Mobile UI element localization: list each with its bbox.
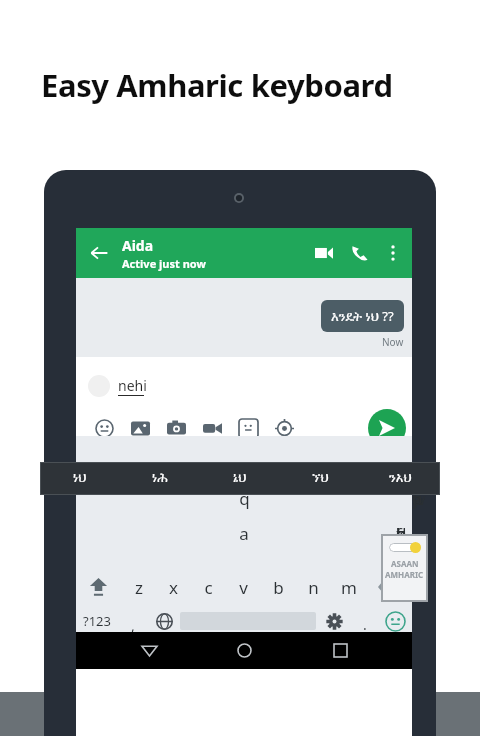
button[interactable]: ነሕ [120,462,200,495]
staticText: b [273,576,284,599]
button[interactable]: ኘህ [280,462,360,495]
staticText: a [239,522,249,545]
button[interactable]: Video call [306,235,342,271]
button[interactable]: z [121,570,156,604]
staticText: q [239,487,250,510]
button[interactable]: . [352,610,378,632]
button[interactable]: Video [194,410,230,446]
staticText: , [131,616,135,635]
button[interactable]: Emoji keyboard [378,610,412,632]
button[interactable]: Recent apps [317,632,363,669]
staticText: ?123 [83,612,111,630]
button[interactable]: v [226,570,261,604]
staticText: ንአህ [389,472,412,485]
button[interactable]: q [76,481,412,515]
button[interactable]: Camera [158,410,194,446]
button[interactable]: b [261,570,296,604]
staticText: 0 [398,471,403,482]
staticText: nehi [118,376,147,395]
button[interactable]: x [156,570,191,604]
staticText: 3 [161,471,166,482]
staticText: ነህ [73,472,87,485]
staticText: n [308,576,319,599]
staticText: c [204,576,213,599]
button[interactable]: ኔህ [200,462,280,495]
staticText: እንዴት ነህ ?? [331,307,394,325]
button[interactable]: ASAAN [383,536,426,600]
button[interactable]: Settings [316,610,352,632]
staticText: Easy Amharic keyboard [41,64,393,106]
button[interactable]: Back [126,632,172,669]
staticText: m [341,576,357,599]
button[interactable]: Call [342,235,378,271]
button[interactable]: ንአህ [360,462,440,495]
staticText: AMHARIC [385,569,424,580]
button[interactable]: m [331,570,366,604]
button[interactable]: Backspace [366,563,412,610]
button[interactable]: a [92,516,396,550]
button[interactable]: Sticker [230,410,266,446]
button[interactable]: Change language [148,610,180,632]
button[interactable]: c [191,570,226,604]
button[interactable]: Location [266,410,302,446]
staticText: . [363,615,367,634]
button[interactable]: ?123 [76,610,118,632]
staticText: ነሕ [152,472,168,485]
button[interactable]: Home [221,632,267,669]
button[interactable]: እንዴት ነህ ?? [321,300,404,332]
button[interactable]: ነህ [40,462,120,495]
staticText: ASAAN [391,558,419,569]
button[interactable]: More options [378,235,408,271]
staticText: Now [382,335,404,349]
button[interactable]: n [296,570,331,604]
staticText: z [135,576,143,599]
staticText: x [169,576,178,599]
button[interactable]: Shift [76,563,121,610]
button[interactable]: Emoji [86,410,122,446]
button[interactable]: Back [76,228,122,278]
staticText: ኔህ [233,472,247,485]
button[interactable]: , [118,610,148,632]
staticText: v [239,576,248,599]
button[interactable]: Send [368,409,406,447]
staticText: ኘህ [312,472,329,485]
staticText: Aida [122,236,154,255]
staticText: Active just now [122,256,206,271]
button[interactable]: Gallery [122,410,158,446]
